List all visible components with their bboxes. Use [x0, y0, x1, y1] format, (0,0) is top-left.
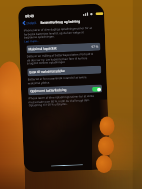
staticText: Batteriet er for nuværende i stand til a… — [28, 75, 87, 85]
staticText: iPhone lærer af dine daglige opladningsr… — [24, 26, 93, 39]
staticText: Optimeret batteriladning — [30, 88, 67, 93]
button[interactable]: Evne til maksimal ydelse — [27, 66, 101, 76]
staticText: iPhone lærer af dine opladningsrutiner f… — [28, 94, 95, 107]
staticText: Indstil. — [26, 21, 37, 25]
staticText: Evne til maksimal ydelse — [29, 69, 65, 74]
staticText: Batteriforbrug og ladning — [40, 19, 80, 25]
button[interactable]: Optimeret batteriladning, slået til — [92, 87, 101, 92]
button[interactable]: Tilbage til Indstillinger — [21, 20, 39, 25]
button[interactable]: Optimeret batteriladning — [28, 84, 102, 95]
button[interactable]: Læs mere... — [24, 39, 39, 43]
staticText: 00:49 — [25, 13, 34, 18]
button[interactable]: Maksimal kapacitet — [26, 43, 101, 53]
staticText: Maksimal kapacitet — [28, 46, 56, 51]
staticText: 97 % — [91, 45, 98, 49]
staticText: Dette er en måling af batterikapaciteten… — [27, 52, 94, 65]
